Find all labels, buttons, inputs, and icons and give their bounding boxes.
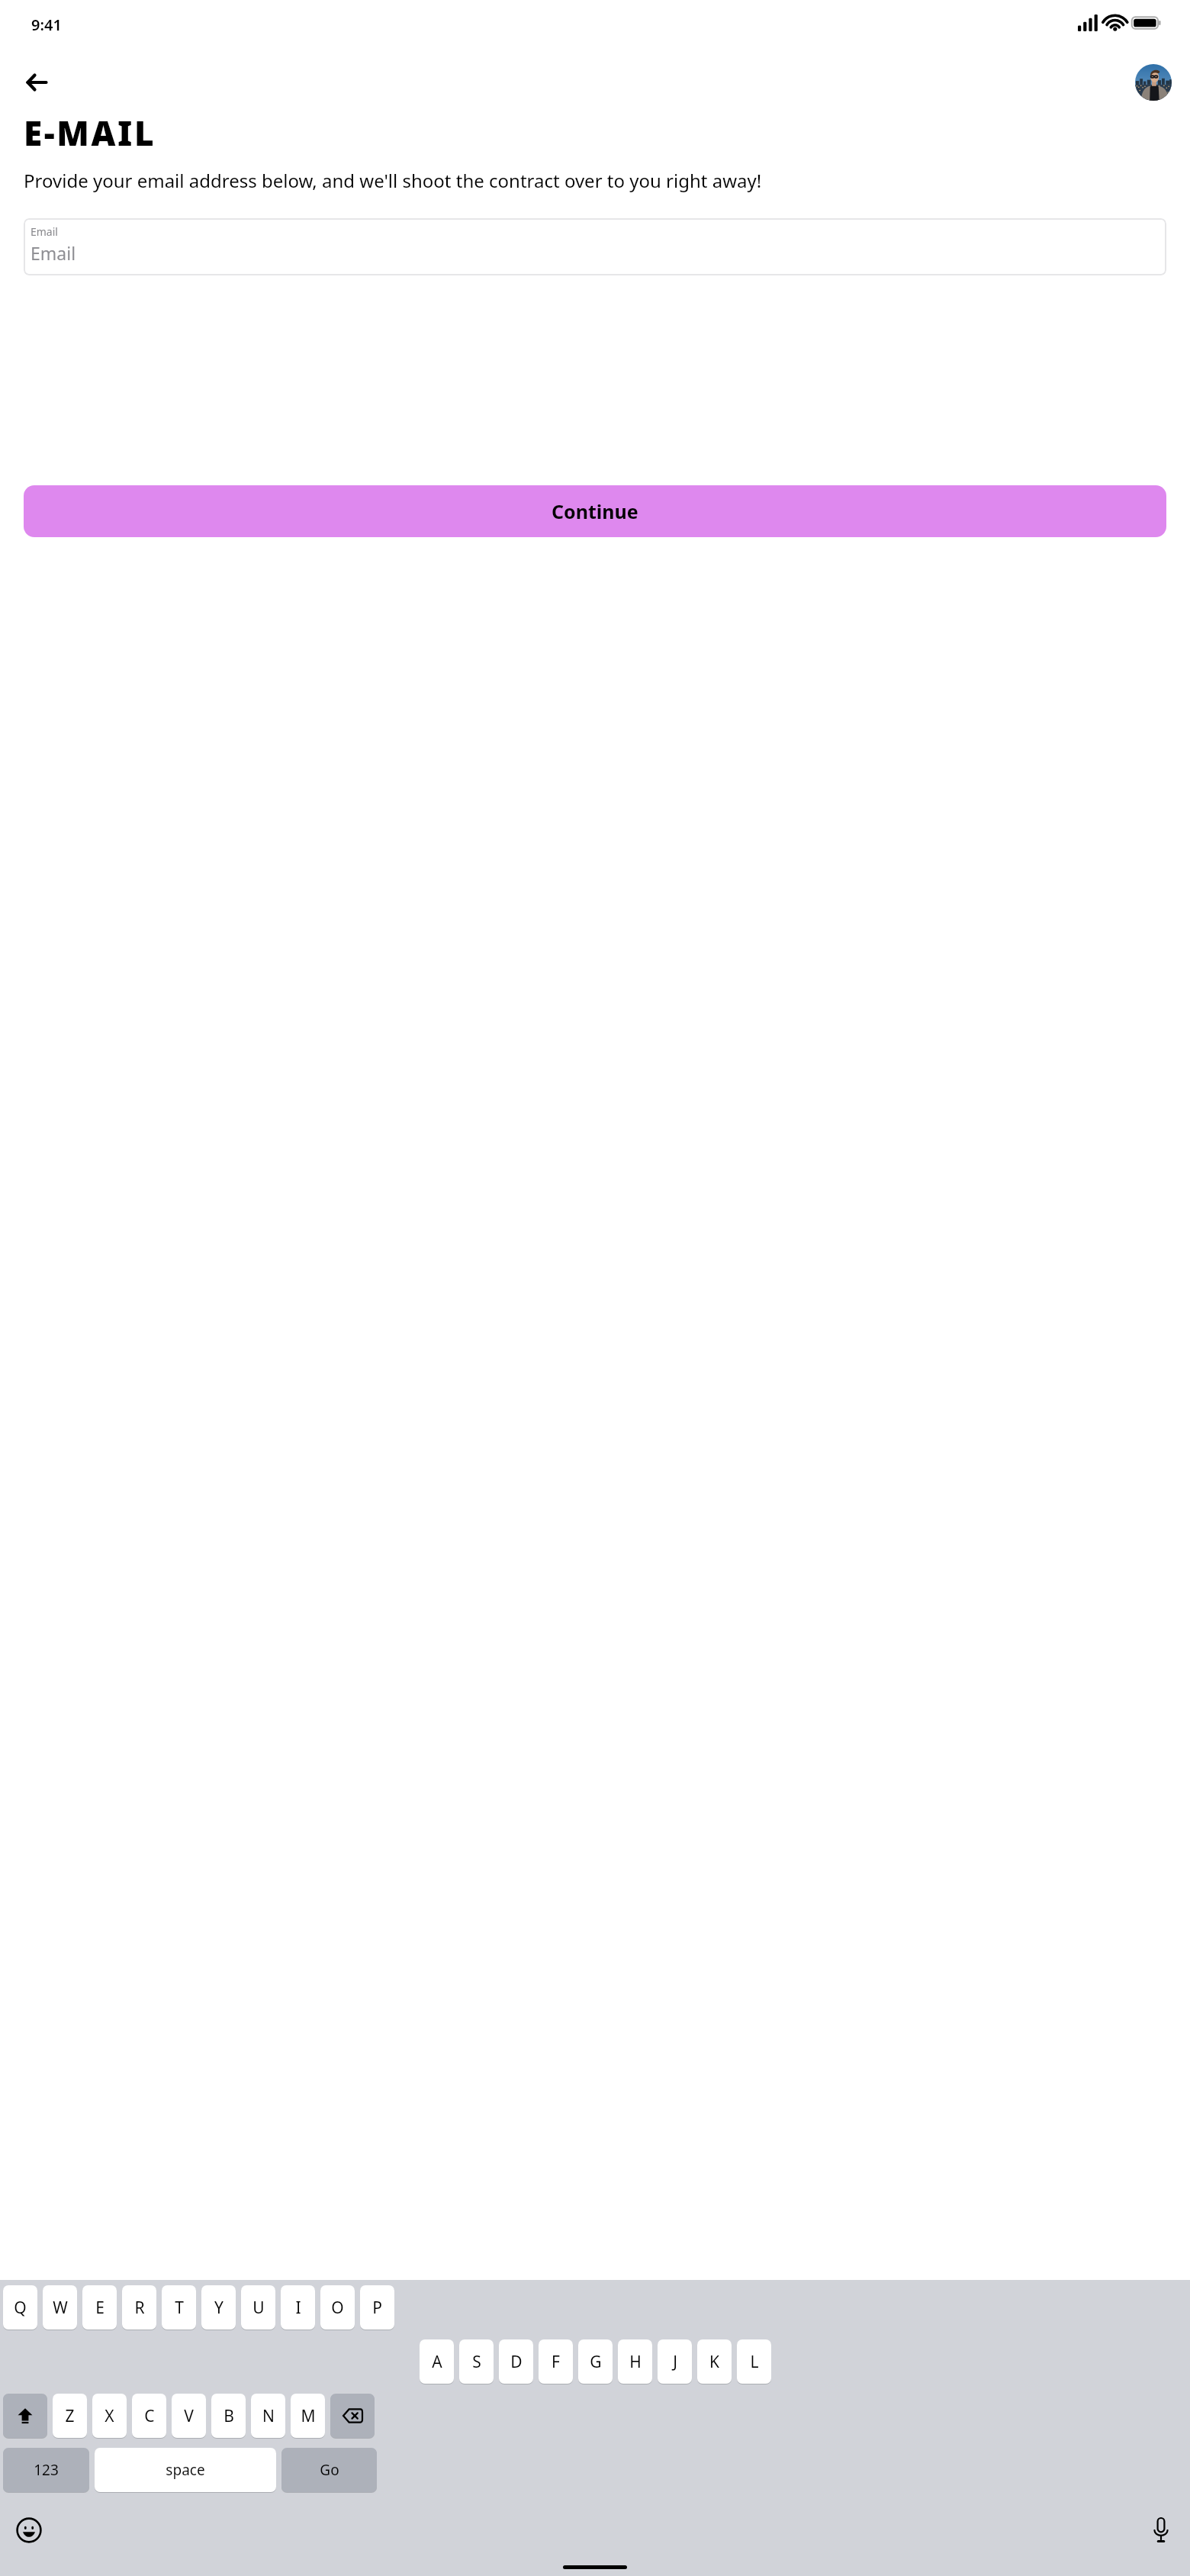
button[interactable]: space	[95, 2448, 276, 2492]
button[interactable]: M	[291, 2394, 325, 2438]
staticText: S	[472, 2351, 481, 2373]
button[interactable]: Backspace	[330, 2394, 375, 2438]
staticText: 123	[34, 2460, 59, 2480]
staticText: I	[295, 2297, 301, 2319]
button[interactable]: Go	[281, 2448, 377, 2492]
staticText: P	[372, 2297, 382, 2319]
staticText: Email	[31, 241, 76, 265]
staticText: V	[184, 2405, 194, 2427]
button[interactable]: Y	[201, 2285, 236, 2330]
staticText: Provide your email address below, and we…	[24, 168, 762, 193]
button[interactable]: C	[132, 2394, 166, 2438]
button[interactable]: L	[737, 2339, 771, 2384]
button[interactable]: H	[618, 2339, 652, 2384]
button[interactable]: I	[281, 2285, 315, 2330]
button[interactable]: Profile	[1135, 64, 1172, 101]
button[interactable]: B	[211, 2394, 246, 2438]
staticText: L	[750, 2351, 759, 2373]
button[interactable]: R	[122, 2285, 156, 2330]
staticText: M	[301, 2405, 316, 2427]
staticText: X	[105, 2405, 114, 2427]
button[interactable]: A	[420, 2339, 454, 2384]
button[interactable]: G	[578, 2339, 613, 2384]
staticText: E	[95, 2297, 105, 2319]
button[interactable]: N	[251, 2394, 285, 2438]
button[interactable]: X	[92, 2394, 127, 2438]
button[interactable]: P	[360, 2285, 394, 2330]
button[interactable]: Email	[24, 218, 1166, 275]
button[interactable]: K	[697, 2339, 732, 2384]
staticText: Continue	[552, 498, 638, 524]
staticText: T	[175, 2297, 184, 2319]
button[interactable]: W	[43, 2285, 77, 2330]
button[interactable]: Q	[3, 2285, 37, 2330]
staticText: Email	[31, 224, 58, 239]
button[interactable]: J	[658, 2339, 692, 2384]
staticText: Q	[14, 2297, 27, 2319]
staticText: K	[709, 2351, 719, 2373]
staticText: N	[262, 2405, 275, 2427]
staticText: space	[166, 2460, 205, 2480]
button[interactable]: Z	[53, 2394, 87, 2438]
button[interactable]: F	[539, 2339, 573, 2384]
button[interactable]: O	[320, 2285, 355, 2330]
staticText: W	[53, 2297, 68, 2319]
staticText: G	[590, 2351, 602, 2373]
staticText: A	[432, 2351, 442, 2373]
button[interactable]: E	[82, 2285, 117, 2330]
staticText: J	[673, 2351, 677, 2373]
staticText: Go	[320, 2460, 339, 2480]
button[interactable]: Continue	[24, 485, 1166, 537]
button[interactable]: 123	[3, 2448, 89, 2492]
staticText: O	[331, 2297, 344, 2319]
button[interactable]: D	[499, 2339, 533, 2384]
staticText: Y	[214, 2297, 224, 2319]
staticText: R	[134, 2297, 145, 2319]
staticText: H	[629, 2351, 642, 2373]
staticText: C	[144, 2405, 155, 2427]
button[interactable]: U	[241, 2285, 275, 2330]
staticText: Z	[65, 2405, 75, 2427]
button[interactable]: T	[162, 2285, 196, 2330]
staticText: B	[224, 2405, 234, 2427]
button[interactable]: Emoji	[9, 2510, 49, 2550]
staticText: U	[252, 2297, 265, 2319]
staticText: D	[510, 2351, 523, 2373]
staticText: 9:41	[31, 14, 62, 35]
button[interactable]: S	[459, 2339, 494, 2384]
button[interactable]: V	[172, 2394, 206, 2438]
button[interactable]: Back	[18, 64, 55, 101]
staticText: F	[552, 2351, 560, 2373]
staticText: E-MAIL	[24, 110, 156, 156]
button[interactable]: Voice input	[1141, 2510, 1181, 2550]
button[interactable]: Shift	[3, 2394, 47, 2438]
